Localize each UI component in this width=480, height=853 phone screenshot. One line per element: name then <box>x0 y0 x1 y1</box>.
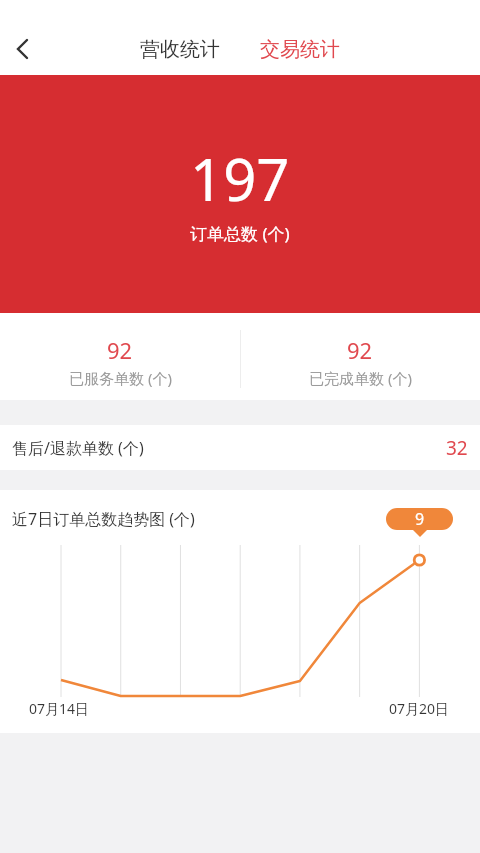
staticText: 92 <box>347 335 373 365</box>
button[interactable]: 售后/退款单数 (个) <box>0 425 480 470</box>
staticText: 92 <box>107 335 133 365</box>
staticText: 近7日订单总数趋势图 (个) <box>12 508 195 530</box>
staticText: 07月14日 <box>29 699 90 718</box>
staticText: 已服务单数 (个) <box>69 368 172 388</box>
button[interactable]: 92 <box>0 313 240 400</box>
button[interactable]: 92 <box>240 313 480 400</box>
button[interactable] <box>5 32 41 68</box>
staticText: 9 <box>415 508 425 530</box>
staticText: 营收统计 <box>140 37 220 62</box>
staticText: 07月20日 <box>389 699 450 718</box>
button[interactable]: 交易统计 <box>260 37 340 62</box>
staticText: 交易统计 <box>260 37 340 62</box>
staticText: 197 <box>190 139 290 218</box>
staticText: 已完成单数 (个) <box>309 368 412 388</box>
staticText: 32 <box>446 435 468 461</box>
button[interactable]: 营收统计 <box>140 37 220 62</box>
staticText: 售后/退款单数 (个) <box>12 437 144 459</box>
button[interactable]: 9 <box>386 508 453 530</box>
staticText: 订单总数 (个) <box>190 222 290 245</box>
